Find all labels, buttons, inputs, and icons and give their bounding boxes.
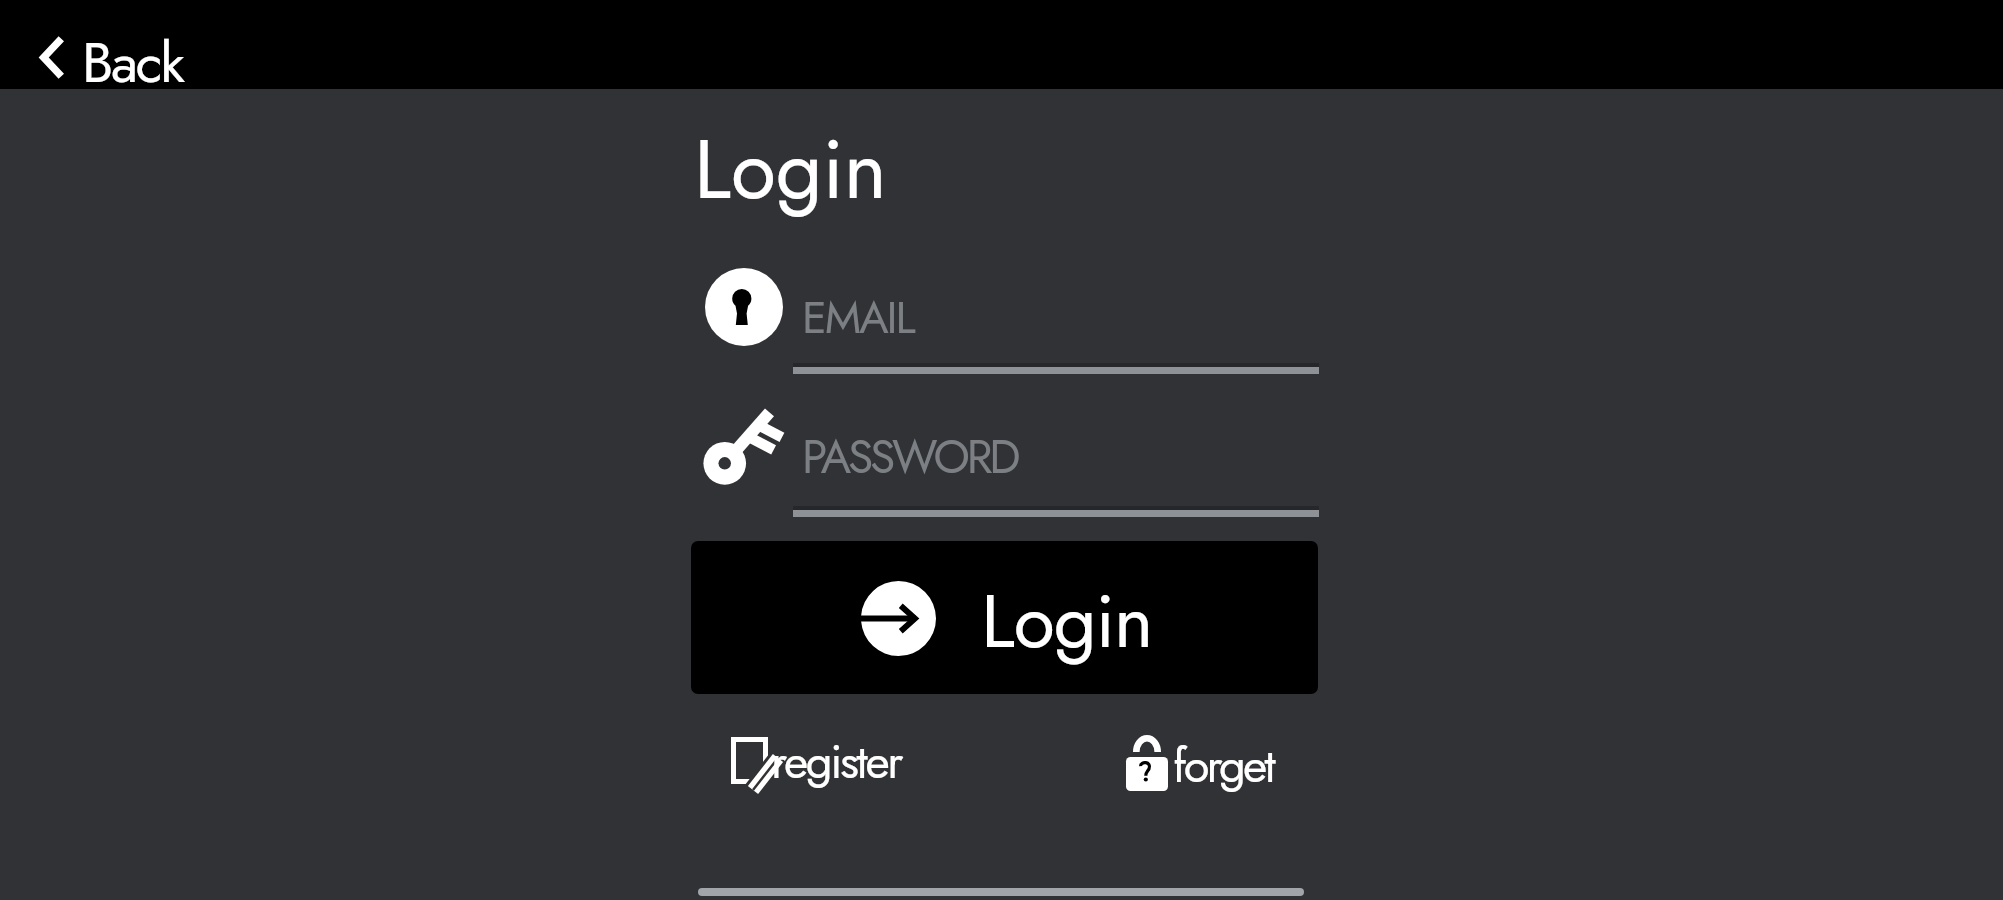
button[interactable]: Login — [691, 541, 1318, 694]
staticText: Login — [694, 110, 887, 228]
button[interactable]: Email — [700, 263, 1324, 379]
other: Back — [40, 35, 65, 80]
button[interactable]: Back — [0, 0, 223, 89]
staticText: Login — [981, 567, 1153, 675]
staticText: EMAIL — [802, 285, 914, 350]
staticText: forget — [1173, 732, 1273, 800]
staticText: PASSWORD — [802, 424, 1018, 490]
staticText: Back — [82, 22, 183, 103]
staticText: register — [771, 728, 901, 796]
other: Password — [706, 404, 783, 494]
button[interactable]: forget — [1126, 724, 1268, 800]
button[interactable]: Password — [700, 402, 1324, 522]
button[interactable]: register — [731, 720, 898, 796]
other: Email — [705, 268, 783, 346]
